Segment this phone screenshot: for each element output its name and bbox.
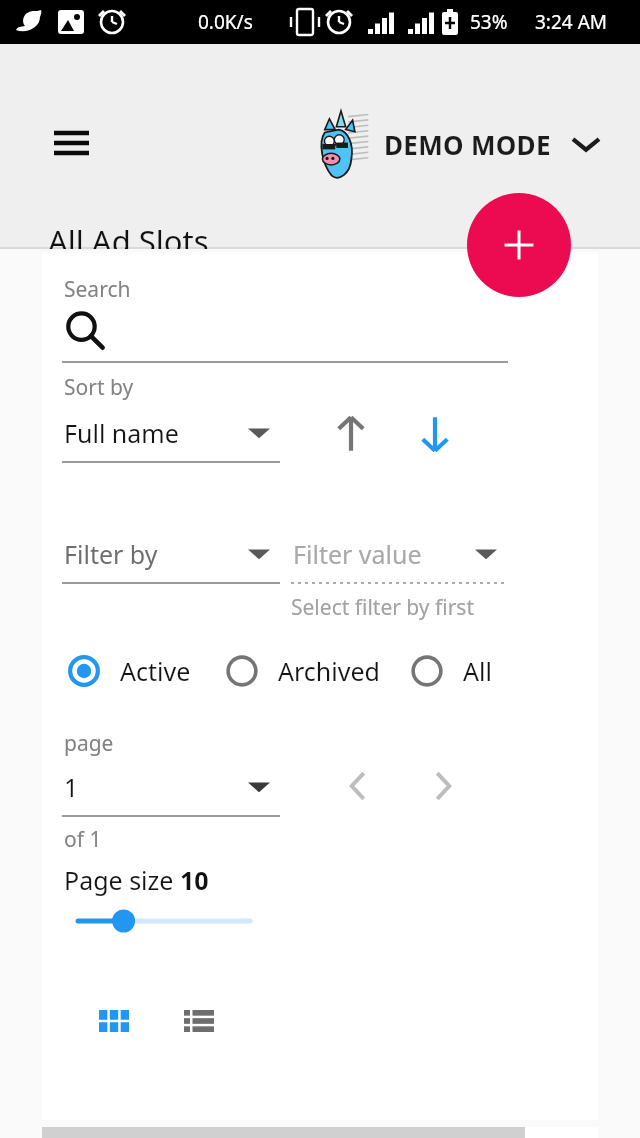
staticText: 3:24 AM: [535, 9, 608, 35]
button[interactable]: Filter value: [291, 528, 507, 580]
staticText: DEMO MODE: [384, 127, 551, 162]
button[interactable]: Filter by: [62, 528, 280, 580]
button[interactable]: Search: [64, 309, 110, 353]
button[interactable]: 1: [62, 761, 280, 813]
staticText: of 1: [64, 825, 102, 854]
staticText: Filter value: [293, 537, 422, 571]
button[interactable]: DEMO MODE: [312, 104, 601, 184]
staticText: Filter by: [64, 537, 158, 571]
staticText: page: [64, 729, 114, 758]
button[interactable]: Sort descending: [406, 405, 464, 463]
staticText: Full name: [64, 416, 179, 450]
staticText: Active: [120, 654, 191, 688]
button[interactable]: Archived: [220, 643, 380, 699]
staticText: Archived: [278, 654, 380, 688]
button[interactable]: Active: [62, 643, 191, 699]
staticText: 1: [64, 770, 79, 804]
staticText: Search: [64, 275, 131, 304]
button[interactable]: Full name: [62, 407, 280, 459]
button[interactable]: Add ad slot: [467, 193, 571, 297]
staticText: 10: [180, 863, 209, 897]
button[interactable]: Open navigation menu: [44, 120, 98, 166]
button[interactable]: Previous page: [330, 758, 386, 814]
button[interactable]: Sort ascending: [322, 405, 380, 463]
button[interactable]: Page size slider: [68, 897, 268, 945]
staticText: Sort by: [64, 373, 134, 402]
staticText: Page size: [64, 863, 180, 897]
button[interactable]: List view: [171, 993, 227, 1049]
staticText: All: [463, 654, 492, 688]
button[interactable]: Grid view: [86, 993, 142, 1049]
staticText: 0.0K/s: [198, 9, 253, 35]
staticText: All Ad Slots: [48, 220, 209, 262]
button[interactable]: Next page: [415, 758, 471, 814]
button[interactable]: All: [405, 643, 492, 699]
staticText: 53%: [470, 9, 508, 35]
staticText: Select filter by first: [291, 593, 474, 622]
